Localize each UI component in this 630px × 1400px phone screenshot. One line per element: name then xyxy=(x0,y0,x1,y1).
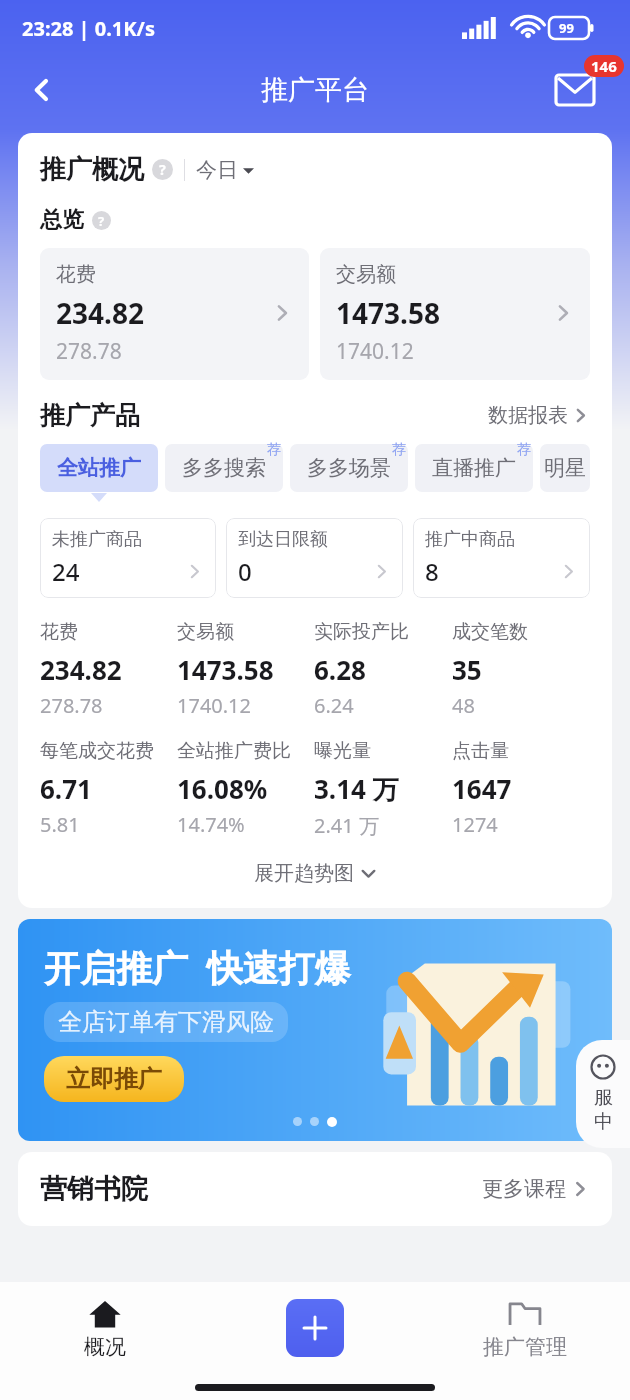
staticText: 成交笔数 xyxy=(452,620,528,644)
staticText: 2.41 万 xyxy=(314,812,379,839)
button[interactable]: 展开趋势图 xyxy=(40,861,590,886)
staticText: 推广平台 xyxy=(261,73,369,107)
staticText: 48 xyxy=(452,692,475,719)
staticText: 1740.12 xyxy=(177,692,251,719)
staticText: 23:28 | 0.1K/s xyxy=(22,15,155,42)
staticText: 多多搜索 xyxy=(182,455,266,481)
staticText: 概况 xyxy=(84,1334,126,1360)
staticText: 荐 xyxy=(392,441,406,459)
staticText: 推广管理 xyxy=(483,1334,567,1360)
staticText: 未推广商品 xyxy=(52,528,142,551)
staticText: 明星 xyxy=(544,455,586,481)
button[interactable]: 曝光量 xyxy=(314,739,452,839)
staticText: 1473.58 xyxy=(177,652,274,687)
button[interactable]: 交易额 xyxy=(320,248,590,380)
staticText: 多多场景 xyxy=(307,455,391,481)
staticText: 展开趋势图 xyxy=(254,861,354,886)
button[interactable]: 全站推广费比 xyxy=(177,739,314,838)
button[interactable]: 直播推广 xyxy=(415,444,533,492)
button[interactable]: 花费 xyxy=(40,248,309,380)
staticText: 24 xyxy=(52,555,80,588)
staticText: 234.82 xyxy=(40,652,122,687)
staticText: 推广概况 xyxy=(40,153,144,186)
staticText: 中 xyxy=(594,1110,613,1134)
button[interactable]: 交易额 xyxy=(177,620,314,719)
button[interactable]: 推广管理 xyxy=(420,1282,630,1374)
staticText: 278.78 xyxy=(40,692,103,719)
button[interactable]: 明星 xyxy=(540,444,590,492)
staticText: 全站推广 xyxy=(57,455,141,481)
button[interactable]: 多多场景 xyxy=(290,444,408,492)
button[interactable]: 今日 xyxy=(196,157,254,183)
staticText: 8 xyxy=(425,555,439,588)
button[interactable]: 点击量 xyxy=(452,739,590,838)
button[interactable]: Add xyxy=(286,1299,344,1357)
staticText: 曝光量 xyxy=(314,739,371,763)
button[interactable]: Help xyxy=(152,159,173,180)
staticText: 1740.12 xyxy=(336,337,414,366)
button[interactable]: 概况 xyxy=(0,1282,210,1374)
button[interactable]: 每笔成交花费 xyxy=(40,739,177,838)
staticText: 234.82 xyxy=(56,294,144,332)
staticText: 16.08% xyxy=(177,771,268,806)
button[interactable]: 更多课程 xyxy=(482,1176,590,1202)
staticText: 6.28 xyxy=(314,652,366,687)
staticText: 营销书院 xyxy=(40,1172,148,1206)
staticText: 99 xyxy=(559,19,574,37)
button[interactable]: 立即推广 xyxy=(44,1056,184,1102)
button[interactable]: Messages xyxy=(556,61,614,119)
button[interactable]: 多多搜索 xyxy=(165,444,283,492)
button[interactable]: 实际投产比 xyxy=(314,620,452,719)
staticText: ? xyxy=(159,160,166,179)
staticText: 6.71 xyxy=(40,771,92,806)
staticText: 278.78 xyxy=(56,337,122,366)
staticText: 14.74% xyxy=(177,811,245,838)
staticText: 1274 xyxy=(452,811,498,838)
staticText: 实际投产比 xyxy=(314,620,409,644)
staticText: 每笔成交花费 xyxy=(40,739,154,763)
staticText: 交易额 xyxy=(177,620,234,644)
staticText: 荐 xyxy=(517,441,531,459)
staticText: 5.81 xyxy=(40,811,80,838)
button[interactable]: 到达日限额 xyxy=(226,518,403,598)
button[interactable]: 未推广商品 xyxy=(40,518,216,598)
staticText: 146 xyxy=(591,56,617,76)
staticText: 点击量 xyxy=(452,739,509,763)
button[interactable]: Help xyxy=(92,211,111,230)
staticText: 今日 xyxy=(196,157,238,183)
staticText: 开启推广 快速打爆 xyxy=(44,943,351,992)
button[interactable]: Service center xyxy=(576,1040,630,1148)
staticText: 花费 xyxy=(56,262,96,287)
staticText: 更多课程 xyxy=(482,1176,566,1202)
staticText: 全站推广费比 xyxy=(177,739,291,763)
staticText: 立即推广 xyxy=(66,1064,162,1094)
button[interactable]: 数据报表 xyxy=(488,403,590,428)
staticText: 花费 xyxy=(40,620,78,644)
button[interactable]: 全站推广 xyxy=(40,444,158,492)
staticText: 3.14 万 xyxy=(314,771,399,807)
staticText: 推广中商品 xyxy=(425,528,515,551)
staticText: 总览 xyxy=(40,206,84,234)
staticText: 1473.58 xyxy=(336,294,440,332)
staticText: 荐 xyxy=(267,441,281,459)
staticText: 6.24 xyxy=(314,692,354,719)
button[interactable]: Back xyxy=(18,66,66,114)
staticText: 直播推广 xyxy=(432,455,516,481)
staticText: 0 xyxy=(238,555,252,588)
staticText: 服 xyxy=(594,1086,613,1110)
staticText: 交易额 xyxy=(336,262,396,287)
staticText: 推广产品 xyxy=(40,400,140,431)
button[interactable]: 成交笔数 xyxy=(452,620,590,719)
button[interactable]: 推广中商品 xyxy=(413,518,590,598)
staticText: ? xyxy=(98,212,105,230)
staticText: 全店订单有下滑风险 xyxy=(58,1007,274,1037)
button[interactable]: 开启推广 快速打爆 xyxy=(18,919,612,1141)
staticText: 35 xyxy=(452,652,482,687)
staticText: 1647 xyxy=(452,771,512,806)
staticText: 数据报表 xyxy=(488,403,568,428)
staticText: 到达日限额 xyxy=(238,528,328,551)
button[interactable]: 花费 xyxy=(40,620,177,719)
